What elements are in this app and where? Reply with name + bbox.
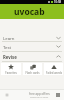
button[interactable]: Test [0,42,64,51]
staticText: Revise [3,54,17,60]
staticText: uvocab [14,6,45,18]
staticText: free app offers [29,92,50,96]
button[interactable]: Flash cards [23,63,42,75]
button[interactable]: Failed words [44,63,63,75]
button[interactable]: Revise [0,52,64,61]
staticText: powered by appia [30,96,49,99]
staticText: Favorites [5,71,17,75]
other: Collapse [55,53,62,60]
other: Expand [55,35,62,41]
button[interactable]: free app offers [0,90,64,100]
other: Expand [55,43,62,50]
staticText: 10:58 [54,0,62,4]
staticText: Test [3,44,12,50]
staticText: Failed words [46,71,62,75]
staticText: Flash cards [25,71,40,75]
button[interactable]: Learn [0,35,64,41]
staticText: Learn [3,35,15,41]
button[interactable]: Favorites [1,63,21,75]
